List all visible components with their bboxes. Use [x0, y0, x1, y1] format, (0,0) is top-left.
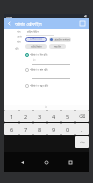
staticText: 3: [38, 113, 42, 120]
staticText: ১০: [45, 106, 48, 109]
staticText: ১০: [33, 59, 36, 62]
staticText: 4: [52, 113, 56, 120]
button[interactable]: পরিমাণ ও দিন প্রতি: [25, 52, 48, 58]
staticText: .: [81, 126, 83, 133]
staticText: 5: [66, 113, 70, 120]
staticText: মাস: [17, 41, 21, 44]
button[interactable]: .: [75, 123, 89, 135]
button[interactable]: প্রোফাইল সম্পাদনা: [49, 37, 71, 42]
staticText: 10:42: [6, 15, 13, 18]
staticText: প্রতি: [15, 48, 19, 51]
staticText: 6: [10, 126, 14, 133]
staticText: পরিমাণ ও দিন প্রতি: [30, 53, 48, 57]
button[interactable]: 3: [33, 110, 47, 122]
button[interactable]: 8: [33, 123, 47, 135]
staticText: 9: [52, 126, 56, 133]
staticText: 0: [66, 126, 70, 133]
staticText: ⌫: [79, 114, 86, 119]
staticText: পরিমাণ ও মাস প্রতি: [30, 68, 48, 72]
staticText: 7: [24, 126, 28, 133]
staticText: ০১ভ০০০০০০০: [30, 38, 43, 41]
button[interactable]: Home: [41, 157, 52, 168]
staticText: পরিমাণ ও বছর প্রতি: [30, 84, 49, 88]
button[interactable]: 7: [19, 123, 33, 135]
button[interactable]: 5: [61, 110, 75, 122]
button[interactable]: Save: [78, 19, 87, 28]
button[interactable]: ০১ভ০০০০০০০: [25, 37, 47, 42]
staticText: ▴▮: [84, 15, 87, 18]
staticText: নাম: [17, 31, 21, 34]
button[interactable]: Back: [5, 19, 14, 28]
button[interactable]: Backspace: [75, 110, 89, 122]
button[interactable]: 6: [4, 123, 19, 135]
button[interactable]: পরিমাণ ও বছর প্রতি: [25, 83, 49, 89]
staticText: প্রোফাইল সম্পাদনা: [54, 38, 70, 42]
staticText: ফোন: [17, 36, 22, 39]
button[interactable]: সময় দিন: [49, 44, 66, 49]
button[interactable]: Back: [17, 157, 28, 168]
staticText: 1: [10, 113, 14, 120]
button[interactable]: 4: [47, 110, 61, 122]
button[interactable]: Done: [75, 136, 89, 148]
staticText: 8: [38, 126, 42, 133]
staticText: রাহিম উদ্দিন: [27, 30, 39, 34]
button[interactable]: 0: [61, 123, 75, 135]
staticText: সম্পন্ন: [80, 141, 85, 143]
button[interactable]: 9: [47, 123, 61, 135]
staticText: 2: [24, 113, 28, 120]
button[interactable]: 1: [4, 110, 19, 122]
staticText: আমার প্রোফাইল: [15, 20, 42, 27]
button[interactable]: তারিখ নির্বাচন: [25, 44, 47, 49]
staticText: তারিখ নির্বাচন: [31, 45, 42, 49]
button[interactable]: Recent apps: [65, 157, 76, 168]
button[interactable]: পরিমাণ ও মাস প্রতি: [25, 67, 48, 73]
button[interactable]: 2: [19, 110, 33, 122]
staticText: সময় দিন: [54, 45, 62, 49]
